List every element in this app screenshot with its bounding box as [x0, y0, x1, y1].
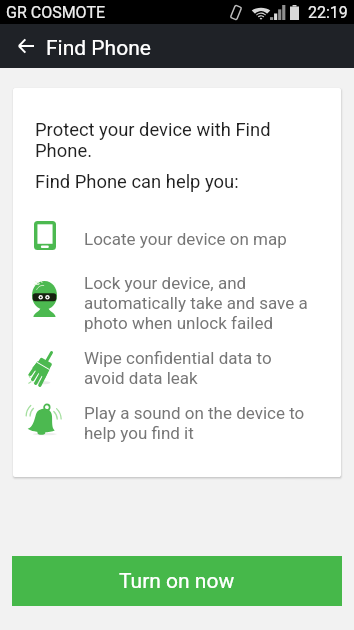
- staticText: Locate your device on map: [84, 229, 312, 249]
- staticText: Wipe confidential data to avoid data lea…: [84, 348, 312, 388]
- staticText: Lock your device, and automatically take…: [84, 273, 312, 333]
- staticText: GR COSMOTE: [6, 3, 106, 22]
- staticText: 22:19: [308, 3, 348, 22]
- button[interactable]: Navigate up: [0, 24, 46, 68]
- staticText: Play a sound on the device to help you f…: [84, 403, 312, 443]
- staticText: Find Phone: [46, 36, 151, 61]
- staticText: Protect your device with Find Phone.: [35, 119, 325, 161]
- staticText: Turn on now: [119, 569, 235, 594]
- staticText: Find Phone can help you:: [35, 171, 239, 192]
- button[interactable]: Turn on now: [12, 556, 342, 606]
